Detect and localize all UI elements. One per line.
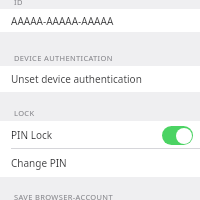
- staticText: DEVICE AUTHENTICATION: [14, 53, 113, 63]
- button[interactable]: AAAAA-AAAAA-AAAAA: [0, 9, 200, 32]
- staticText: AAAAA-AAAAA-AAAAA: [11, 14, 200, 28]
- staticText: PIN Lock: [11, 128, 162, 142]
- staticText: ID: [14, 0, 23, 6]
- staticText: LOCK: [14, 108, 35, 118]
- button[interactable]: PIN Lock: [0, 121, 200, 149]
- staticText: Change PIN: [11, 156, 200, 170]
- staticText: SAVE BROWSER-ACCOUNT: [14, 192, 113, 200]
- staticText: Unset device authentication: [11, 72, 200, 86]
- button[interactable]: PIN Lock toggle: [162, 126, 193, 145]
- button[interactable]: Unset device authentication: [0, 66, 200, 92]
- button[interactable]: Change PIN: [0, 149, 200, 177]
